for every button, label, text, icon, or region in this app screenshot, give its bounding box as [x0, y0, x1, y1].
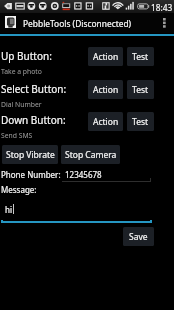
button[interactable]: Action — [88, 80, 123, 99]
button[interactable]: Action — [88, 47, 123, 66]
staticText: Up Button: — [1, 49, 52, 63]
staticText: Stop Camera — [65, 149, 117, 161]
button[interactable]: Save — [123, 227, 154, 246]
staticText: Test — [132, 51, 149, 63]
button[interactable]: More options — [154, 13, 174, 33]
staticText: PebbleTools (Disconnected) — [23, 18, 132, 29]
button[interactable]: Stop Vibrate — [2, 145, 58, 164]
staticText: Test — [132, 116, 149, 128]
staticText: Message: — [1, 184, 37, 195]
staticText: Action — [93, 51, 119, 63]
staticText: Action — [93, 116, 119, 128]
button[interactable]: Test — [127, 112, 154, 131]
button[interactable]: Test — [127, 80, 154, 99]
staticText: Take a photo — [1, 67, 42, 76]
button[interactable]: Action — [88, 112, 123, 131]
staticText: Down Button: — [1, 113, 66, 127]
staticText: Dial Number — [1, 100, 42, 109]
staticText: Save — [129, 231, 148, 243]
button[interactable]: Test — [127, 47, 154, 66]
staticText: Send SMS — [1, 131, 33, 140]
staticText: 12345678 — [65, 169, 102, 180]
staticText: Phone Number: — [1, 169, 61, 180]
staticText: hi — [5, 204, 13, 215]
button[interactable]: Stop Camera — [61, 145, 120, 164]
staticText: Action — [93, 84, 119, 96]
staticText: Select Button: — [1, 82, 67, 96]
staticText: Stop Vibrate — [6, 149, 55, 161]
staticText: Test — [132, 84, 149, 96]
staticText: 18:43 — [151, 2, 173, 13]
